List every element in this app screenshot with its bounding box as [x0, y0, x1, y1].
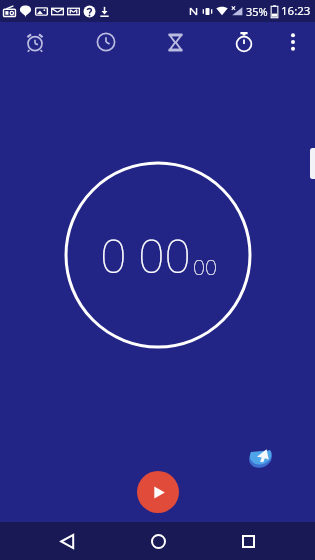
staticText: 35%	[246, 4, 268, 19]
staticText: 00	[193, 253, 217, 282]
button[interactable]: Stopwatch	[222, 22, 266, 62]
button[interactable]: Home	[134, 522, 182, 560]
staticText: 0 00	[100, 224, 191, 287]
button[interactable]: More options	[273, 22, 313, 62]
button[interactable]: Start	[137, 471, 179, 513]
button[interactable]: Back	[43, 522, 91, 560]
button[interactable]: Recent apps	[224, 522, 272, 560]
button[interactable]: Clock	[84, 22, 128, 62]
button[interactable]: Timer	[153, 22, 197, 62]
button[interactable]: Alarm	[13, 22, 57, 62]
staticText: 16:23	[281, 3, 311, 19]
